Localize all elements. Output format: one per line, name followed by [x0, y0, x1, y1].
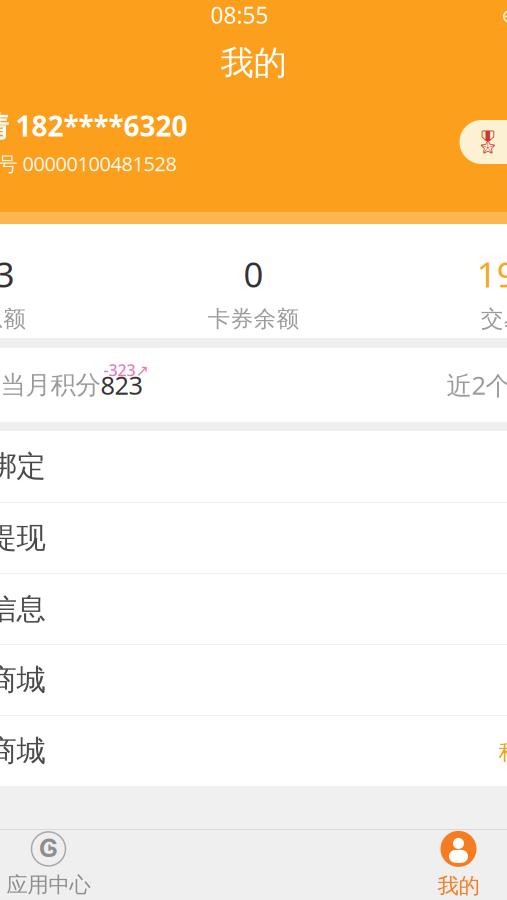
- staticText: -323↗: [103, 359, 148, 381]
- staticText: 0: [243, 251, 263, 297]
- button[interactable]: 卡券商城: [0, 644, 507, 715]
- staticText: 商户编号 00000100481528: [0, 150, 176, 177]
- staticText: 账户总额: [0, 305, 26, 333]
- button[interactable]: Ꮆ: [0, 830, 253, 900]
- staticText: 🎖: [473, 129, 502, 155]
- staticText: 我的: [437, 873, 479, 899]
- staticText: 账户信息: [0, 591, 45, 627]
- staticText: 当月积分: [0, 369, 100, 400]
- staticText: 王*清 182****6320: [0, 107, 187, 144]
- button[interactable]: 19435: [390, 246, 507, 338]
- button[interactable]: 0.53: [0, 246, 117, 338]
- button[interactable]: 账户提现: [0, 502, 507, 573]
- button[interactable]: 账户信息: [0, 573, 507, 644]
- button[interactable]: 🎖: [459, 120, 507, 164]
- staticText: 19435: [477, 251, 507, 297]
- staticText: 卡券余额: [207, 305, 299, 333]
- button[interactable]: 微信绑定: [0, 431, 507, 502]
- staticText: 应用中心: [6, 872, 90, 898]
- staticText: 0.53: [0, 251, 15, 297]
- staticText: 交易积分: [481, 305, 507, 333]
- button[interactable]: 我的: [253, 830, 507, 900]
- staticText: 我的: [220, 42, 286, 83]
- staticText: 积分商城: [0, 733, 45, 769]
- staticText: 近2个月积分: [446, 368, 507, 402]
- staticText: ⊕ ◤ ✻ 70%: [501, 3, 507, 27]
- staticText: 08:55: [210, 0, 268, 30]
- staticText: 微信绑定: [0, 448, 45, 484]
- staticText: 积分等级vu: [498, 736, 507, 766]
- button[interactable]: 积分商城: [0, 715, 507, 786]
- button[interactable]: 0: [117, 246, 390, 338]
- staticText: Ꮆ: [39, 836, 58, 861]
- staticText: 823: [100, 368, 142, 402]
- staticText: 账户提现: [0, 520, 45, 556]
- staticText: 卡券商城: [0, 662, 45, 698]
